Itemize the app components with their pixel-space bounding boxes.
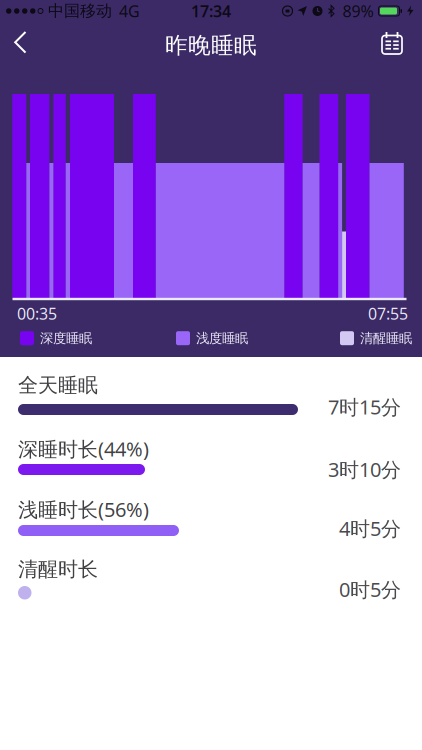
staticText: 昨晚睡眠: [165, 32, 257, 59]
button[interactable]: Sleep report: [381, 24, 422, 66]
staticText: 深度睡眠: [40, 330, 92, 346]
staticText: 7时15分: [328, 393, 401, 420]
staticText: 89%: [342, 0, 373, 22]
staticText: 0时5分: [339, 576, 401, 603]
staticText: 浅睡时长(56%): [18, 496, 149, 523]
staticText: 00:35: [17, 303, 57, 324]
staticText: 3时10分: [328, 456, 401, 483]
staticText: 17:34: [191, 0, 231, 22]
button[interactable]: Back: [0, 23, 27, 66]
staticText: 深睡时长(44%): [18, 435, 149, 462]
staticText: 清醒睡眠: [360, 330, 412, 346]
staticText: 07:55: [368, 303, 408, 324]
staticText: 4G: [119, 0, 140, 22]
staticText: 全天睡眠: [18, 373, 98, 398]
staticText: 清醒时长: [18, 557, 98, 582]
staticText: 中国移动: [48, 1, 112, 21]
staticText: 浅度睡眠: [196, 330, 248, 346]
staticText: 4时5分: [339, 515, 401, 542]
